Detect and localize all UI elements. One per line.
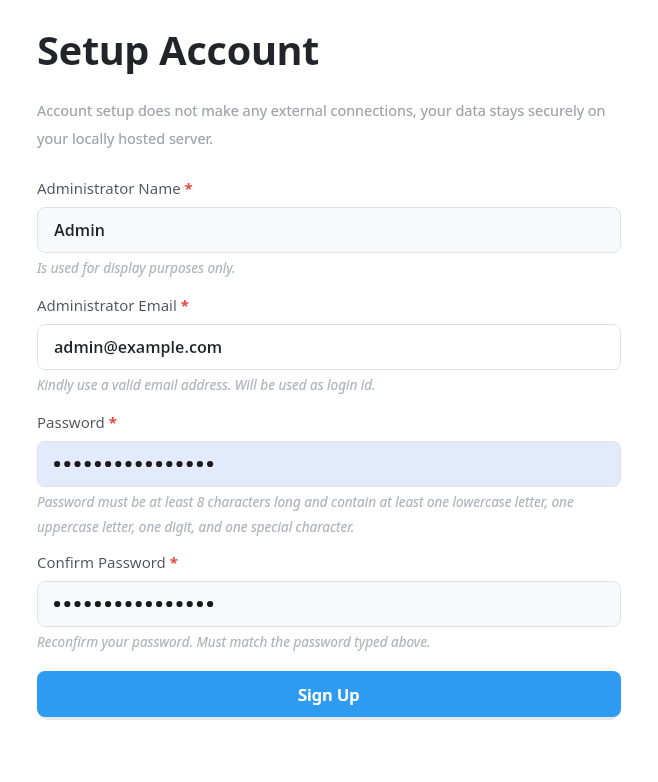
staticText: Password must be at least 8 characters l… — [37, 493, 621, 536]
button[interactable]: Confirm Password field — [37, 581, 621, 627]
staticText: Is used for display purposes only. — [37, 259, 621, 277]
staticText: Setup Account — [37, 22, 319, 76]
staticText: admin@example.com — [54, 336, 223, 358]
staticText: Password * — [37, 412, 117, 432]
staticText: Admin — [54, 219, 105, 241]
staticText: Kindly use a valid email address. Will b… — [37, 376, 621, 394]
staticText: Confirm Password * — [37, 552, 178, 572]
staticText: Reconfirm your password. Must match the … — [37, 633, 621, 651]
button[interactable]: Administrator Email field — [37, 324, 621, 370]
staticText: Sign Up — [298, 683, 360, 705]
button[interactable]: Administrator Name field — [37, 207, 621, 253]
staticText: Administrator Name * — [37, 178, 193, 198]
staticText: Account setup does not make any external… — [37, 100, 621, 148]
button[interactable]: Sign Up — [37, 671, 621, 717]
staticText: Administrator Email * — [37, 295, 189, 315]
button[interactable]: Password field — [37, 441, 621, 487]
